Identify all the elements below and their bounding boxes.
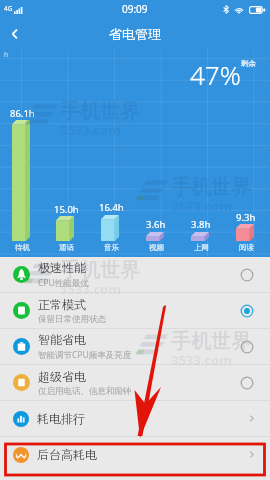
staticText: 09:09 <box>122 2 148 16</box>
staticText: 极速性能 <box>38 260 86 275</box>
button[interactable]: 正常模式 <box>0 293 270 329</box>
staticText: 待机 <box>15 243 30 252</box>
staticText: 9.3h <box>236 211 256 224</box>
staticText: h <box>4 50 9 60</box>
staticText: 3533.com <box>171 197 232 215</box>
button[interactable]: Back <box>0 19 30 49</box>
staticText: 3.8h <box>191 218 211 231</box>
staticText: CPU性能最优 <box>38 277 89 289</box>
staticText: 正常模式 <box>38 297 86 312</box>
staticText: 47% <box>190 57 241 92</box>
staticText: 4G <box>4 4 13 13</box>
staticText: 86.1h <box>10 107 35 120</box>
staticText: 手机世界 <box>60 99 140 124</box>
staticText: 视频 <box>149 243 164 252</box>
staticText: 省电管理 <box>109 26 161 42</box>
button[interactable]: 智能省电 <box>0 329 270 365</box>
staticText: 3533.com <box>60 121 121 139</box>
staticText: 手机世界 <box>171 175 251 200</box>
staticText: 智能调节CPU频率及亮度 <box>38 349 132 361</box>
button[interactable]: 超级省电 <box>0 365 270 401</box>
staticText: 耗电排行 <box>37 411 85 426</box>
staticText: 16.4h <box>99 201 124 214</box>
staticText: 超级省电 <box>38 369 86 384</box>
staticText: 3533.com <box>171 351 232 369</box>
button[interactable]: 后台高耗电 <box>0 437 270 472</box>
staticText: 3.6h <box>146 218 166 231</box>
button[interactable]: 极速性能 <box>0 257 270 293</box>
staticText: 通话 <box>59 243 74 252</box>
staticText: 音乐 <box>104 243 119 252</box>
staticText: 智能省电 <box>38 332 86 347</box>
staticText: 阅读 <box>239 243 254 252</box>
staticText: 手机世界 <box>60 258 140 283</box>
staticText: 手机世界 <box>171 329 251 354</box>
button[interactable]: 耗电排行 <box>0 401 270 436</box>
staticText: 保留日常使用状态 <box>38 314 106 325</box>
staticText: 上网 <box>194 243 209 252</box>
staticText: 后台高耗电 <box>37 447 97 462</box>
staticText: 15.0h <box>54 203 79 216</box>
staticText: 3533.com <box>60 280 121 298</box>
staticText: 仅启用电话、信息和闹钟 <box>38 386 132 397</box>
staticText: 剩余 <box>241 59 256 68</box>
